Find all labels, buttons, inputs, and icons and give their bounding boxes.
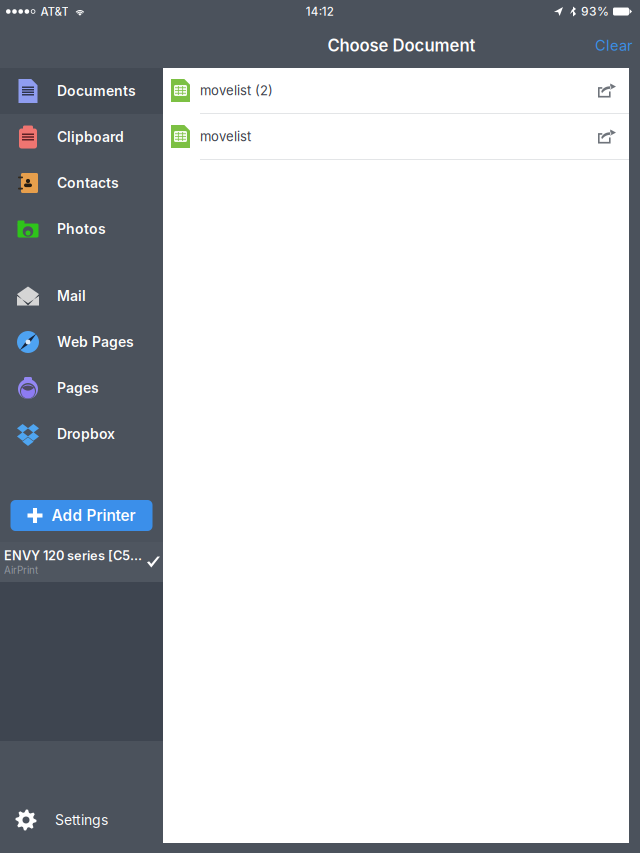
staticText: movelist (2) <box>200 83 273 98</box>
staticText: ENVY 120 series [C5... <box>4 548 142 563</box>
button[interactable]: ENVY 120 series [C5... <box>0 542 163 582</box>
staticText: AirPrint <box>4 564 38 576</box>
button[interactable]: Add Printer <box>10 500 152 531</box>
button[interactable]: Pages <box>0 365 163 411</box>
staticText: Photos <box>57 220 106 237</box>
button[interactable]: Photos <box>0 206 163 252</box>
staticText: Clear <box>595 37 633 54</box>
staticText: Pages <box>57 379 99 396</box>
staticText: 93% <box>581 4 609 19</box>
staticText: Dropbox <box>57 425 115 442</box>
staticText: Contacts <box>57 174 119 191</box>
staticText: Documents <box>57 82 136 99</box>
staticText: Clipboard <box>57 128 124 145</box>
staticText: Web Pages <box>57 333 134 350</box>
staticText: Add Printer <box>51 506 135 525</box>
button[interactable]: Settings <box>0 797 163 843</box>
button[interactable]: Web Pages <box>0 319 163 365</box>
button[interactable]: Documents <box>0 68 163 114</box>
button[interactable]: Mail <box>0 273 163 319</box>
button[interactable]: Contacts <box>0 160 163 206</box>
staticText: Choose Document <box>327 35 475 56</box>
button[interactable]: Dropbox <box>0 411 163 457</box>
button[interactable]: Clipboard <box>0 114 163 160</box>
staticText: Settings <box>55 811 108 828</box>
staticText: movelist <box>200 129 251 144</box>
staticText: 14:12 <box>306 5 334 18</box>
button[interactable]: Share movelist (2) <box>585 68 629 113</box>
button[interactable]: Clear <box>581 31 640 60</box>
staticText: AT&T <box>40 5 68 18</box>
button[interactable]: Share movelist <box>585 114 629 159</box>
staticText: Mail <box>57 287 86 304</box>
